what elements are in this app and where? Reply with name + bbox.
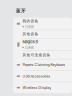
staticText: 已连接	[25, 25, 34, 29]
staticText: Papers Claiming Keyboard	[22, 63, 65, 67]
staticText: 其他可连接设备	[22, 53, 50, 57]
button[interactable]: Papers Claiming Keyboard	[13, 59, 72, 70]
button[interactable]: MagicKB	[13, 38, 72, 50]
staticText: 蓝牙	[16, 8, 26, 14]
staticText: MagicKB	[22, 40, 37, 44]
staticText: USB Accessories	[22, 74, 50, 78]
staticText: 已连接	[25, 45, 34, 49]
staticText: 其他设备	[22, 32, 38, 36]
button[interactable]: USB Accessories	[13, 71, 72, 82]
staticText: 我的设备	[22, 19, 38, 23]
button[interactable]: 我的设备	[13, 18, 72, 30]
staticText: Wireless Display	[22, 85, 51, 90]
button[interactable]: Wireless Display	[13, 82, 72, 93]
button[interactable]: 其他设备	[13, 30, 72, 38]
button[interactable]: 其他可连接设备	[13, 51, 72, 59]
